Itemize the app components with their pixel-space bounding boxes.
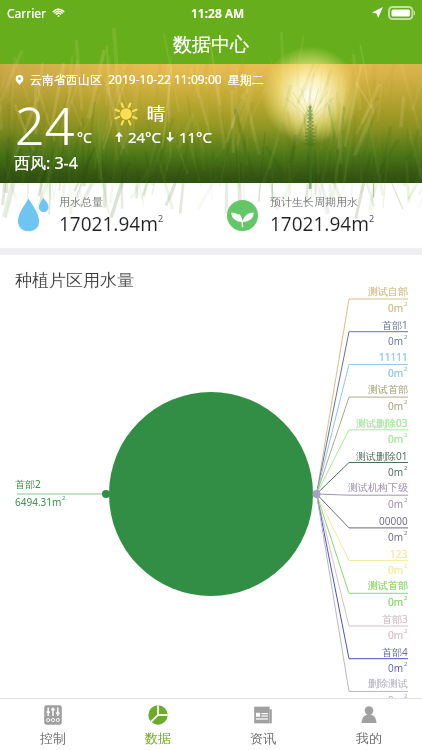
staticText: 0m — [388, 465, 404, 479]
staticText: 首部3 — [382, 612, 408, 626]
staticText: 数据 — [145, 730, 171, 746]
staticText: 0m — [388, 628, 404, 642]
staticText: 控制 — [40, 730, 66, 746]
staticText: 24 — [15, 89, 75, 160]
staticText: 测试自部 — [368, 285, 408, 298]
button[interactable]: 预计生长周期用水 — [211, 183, 422, 248]
staticText: 2 — [404, 562, 408, 570]
staticText: 种植片区用水量 — [15, 270, 134, 291]
staticText: 2 — [404, 300, 408, 308]
staticText: 2 — [369, 212, 375, 224]
staticText: 123 — [390, 547, 408, 561]
staticText: 删除测试 — [368, 677, 408, 690]
staticText: 2 — [404, 594, 408, 602]
staticText: 2 — [62, 494, 66, 502]
staticText: 0m — [388, 301, 404, 315]
staticText: 2 — [404, 365, 408, 373]
staticText: 首部2 — [15, 477, 41, 491]
staticText: 0m — [388, 432, 404, 446]
staticText: 我的 — [356, 730, 382, 746]
staticText: 2 — [404, 398, 408, 406]
staticText: 首部4 — [382, 645, 408, 659]
staticText: 用水总量 — [59, 195, 103, 209]
button[interactable]: 数据 — [105, 699, 210, 750]
staticText: 11°C — [175, 127, 212, 147]
staticText: 0m — [388, 399, 404, 413]
staticText: 11:28 AM — [191, 5, 245, 21]
staticText: 0m — [388, 595, 404, 609]
button[interactable]: 我的 — [316, 699, 422, 750]
staticText: 测试删除03 — [356, 416, 408, 430]
staticText: 0m — [388, 530, 404, 544]
staticText: °C — [77, 128, 92, 147]
staticText: 预计生长周期用水 — [270, 195, 358, 209]
staticText: 西风: 3-4 — [14, 152, 78, 174]
staticText: 测试首部 — [368, 579, 408, 592]
staticText: 2 — [404, 333, 408, 341]
staticText: 0m — [388, 334, 404, 348]
staticText: 首部1 — [382, 318, 408, 332]
staticText: 数据中心 — [173, 33, 249, 57]
staticText: 测试首部 — [368, 383, 408, 396]
staticText: 测试删除01 — [356, 449, 408, 463]
staticText: 资讯 — [250, 730, 276, 746]
staticText: 2 — [404, 627, 408, 635]
staticText: 0m — [388, 563, 404, 577]
staticText: 24°C — [124, 127, 165, 147]
staticText: 2 — [404, 496, 408, 504]
button[interactable]: 用水总量 — [0, 183, 211, 248]
staticText: 测试机构下级 — [348, 481, 408, 494]
staticText: 17021.94m — [59, 211, 158, 237]
staticText: 2 — [404, 464, 408, 472]
staticText: 2 — [404, 431, 408, 439]
staticText: 晴 — [147, 103, 165, 126]
staticText: 0m — [388, 366, 404, 380]
staticText: 00000 — [379, 514, 408, 528]
button[interactable]: 资讯 — [210, 699, 316, 750]
staticText: 17021.94m — [270, 211, 369, 237]
staticText: 2 — [404, 660, 408, 668]
staticText: 0m — [388, 693, 404, 707]
staticText: 0m — [388, 497, 404, 511]
staticText: 6494.31m — [15, 495, 62, 509]
staticText: 0m — [388, 661, 404, 675]
staticText: 2 — [404, 529, 408, 537]
staticText: Carrier — [7, 5, 47, 21]
staticText: 2 — [158, 212, 164, 224]
staticText: 云南省西山区 2019-10-22 11:09:00 星期二 — [30, 71, 264, 87]
button[interactable]: 控制 — [0, 699, 105, 750]
staticText: 11111 — [379, 350, 408, 364]
staticText: 2 — [404, 692, 408, 700]
